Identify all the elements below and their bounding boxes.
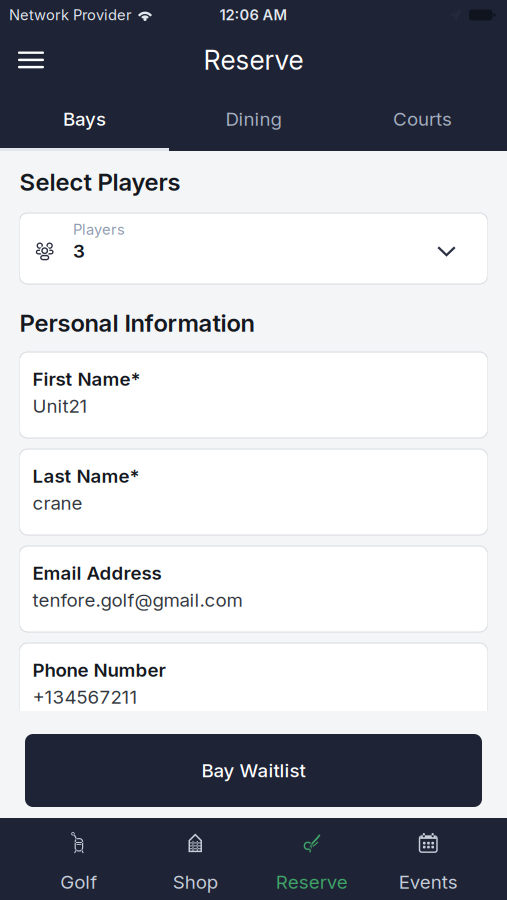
staticText: +134567211: [32, 686, 137, 708]
staticText: Dining: [225, 108, 281, 130]
staticText: Shop: [173, 871, 218, 893]
staticText: Reserve: [276, 871, 348, 893]
staticText: crane: [32, 492, 82, 514]
staticText: Golf: [60, 871, 97, 893]
button[interactable]: Bay Waitlist: [25, 734, 482, 807]
staticText: Select Players: [19, 167, 180, 196]
staticText: Events: [399, 871, 458, 893]
staticText: 3: [73, 240, 85, 262]
staticText: tenfore.golf@gmail.com: [32, 589, 242, 611]
staticText: Personal Information: [19, 308, 254, 337]
staticText: Reserve: [203, 44, 303, 76]
staticText: Network Provider: [9, 6, 132, 24]
button[interactable]: Events: [370, 818, 486, 900]
button[interactable]: Shop: [137, 818, 253, 900]
button[interactable]: Open menu: [0, 31, 62, 89]
staticText: Bays: [63, 108, 106, 130]
button[interactable]: Dining: [169, 90, 338, 151]
button[interactable]: Courts: [338, 90, 507, 151]
staticText: Players: [73, 221, 125, 238]
staticText: Bay Waitlist: [201, 759, 305, 782]
staticText: Courts: [393, 108, 452, 130]
staticText: Unit21: [32, 395, 87, 417]
button[interactable]: Golf: [20, 818, 137, 900]
staticText: First Name*: [32, 368, 140, 390]
button[interactable]: Players: [19, 213, 487, 284]
button[interactable]: Bays: [0, 90, 169, 151]
staticText: Email Address: [32, 562, 161, 584]
staticText: 12:06 AM: [219, 6, 287, 24]
staticText: Last Name*: [32, 465, 139, 487]
button[interactable]: Reserve: [253, 818, 370, 900]
staticText: Phone Number: [32, 659, 165, 681]
